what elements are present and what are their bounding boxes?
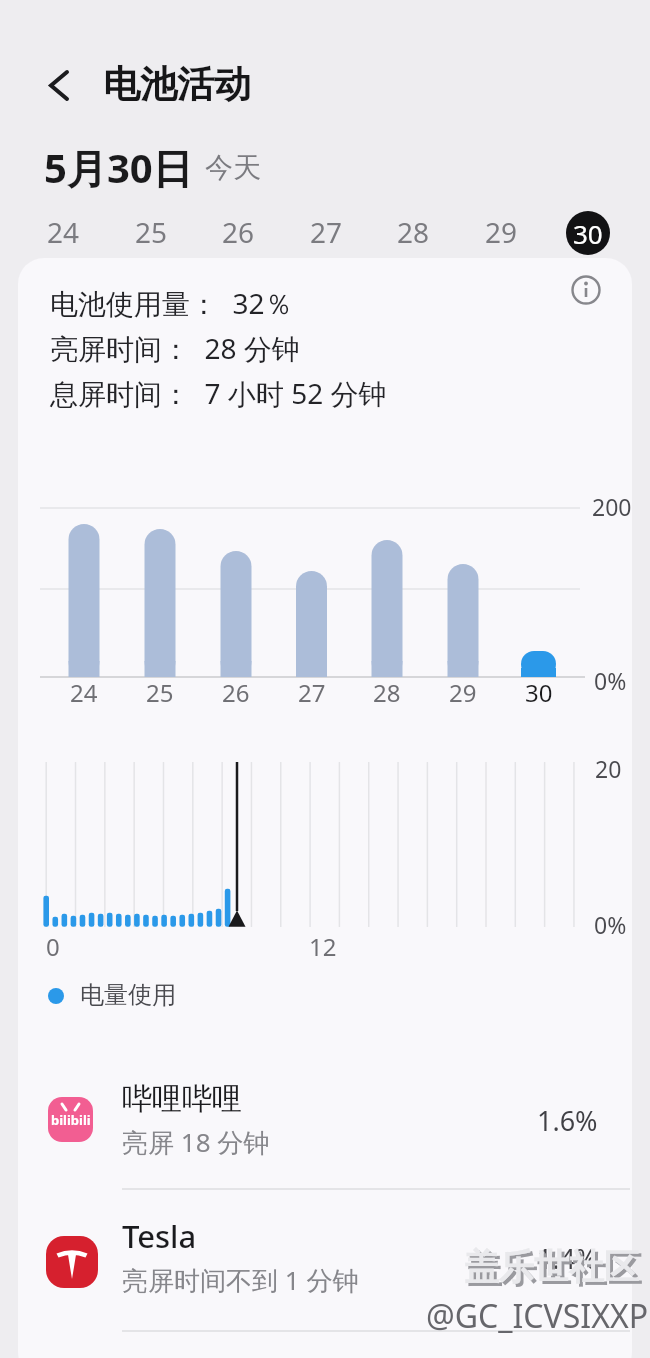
staticText: 27: [310, 213, 343, 251]
staticText: 27: [298, 676, 326, 709]
staticText: 30: [525, 676, 553, 709]
staticText: @GC_ICVSIXXP: [426, 1294, 649, 1338]
staticText: 电量使用: [80, 980, 176, 1010]
button[interactable]: 26: [195, 207, 282, 257]
staticText: 25: [135, 213, 168, 251]
button[interactable]: 24: [20, 207, 107, 257]
staticText: 24: [70, 676, 98, 709]
staticText: Tesla: [122, 1215, 197, 1257]
staticText: 亮屏 18 分钟: [122, 1124, 270, 1160]
staticText: 12: [309, 930, 337, 963]
staticText: 电池活动: [103, 61, 251, 108]
button[interactable]: [38, 60, 86, 108]
staticText: 1.4%: [537, 1240, 598, 1277]
staticText: 29: [449, 676, 477, 709]
button[interactable]: [18, 1058, 632, 1189]
staticText: 28: [373, 676, 401, 709]
staticText: 0%: [594, 909, 627, 940]
staticText: 24: [47, 213, 80, 251]
staticText: 0%: [594, 665, 627, 696]
staticText: 今天: [205, 150, 261, 185]
staticText: 盖乐世社区: [467, 1248, 642, 1292]
staticText: 26: [222, 676, 250, 709]
button[interactable]: 30: [566, 211, 610, 255]
button[interactable]: [562, 266, 610, 314]
staticText: 1.6%: [537, 1102, 598, 1139]
staticText: 0: [46, 930, 60, 963]
staticText: 200: [592, 491, 632, 522]
button[interactable]: [18, 1190, 632, 1332]
staticText: 25: [146, 676, 174, 709]
staticText: 29: [485, 213, 518, 251]
staticText: 5月30日: [44, 140, 193, 195]
staticText: 电池使用量： 32％: [50, 284, 293, 322]
button[interactable]: 29: [458, 207, 545, 257]
button[interactable]: 28: [370, 207, 457, 257]
staticText: 30: [573, 216, 603, 251]
staticText: 哔哩哔哩: [122, 1080, 242, 1118]
button[interactable]: 27: [283, 207, 370, 257]
staticText: bilibili: [51, 1111, 91, 1129]
staticText: 息屏时间： 7 小时 52 分钟: [50, 374, 387, 412]
staticText: 28: [397, 213, 430, 251]
staticText: 盖乐世社区: [464, 1245, 639, 1289]
button[interactable]: 25: [108, 207, 195, 257]
staticText: 亮屏时间不到 1 分钟: [122, 1262, 359, 1298]
staticText: 20: [595, 753, 622, 784]
staticText: 亮屏时间： 28 分钟: [50, 329, 300, 367]
staticText: 26: [222, 213, 255, 251]
